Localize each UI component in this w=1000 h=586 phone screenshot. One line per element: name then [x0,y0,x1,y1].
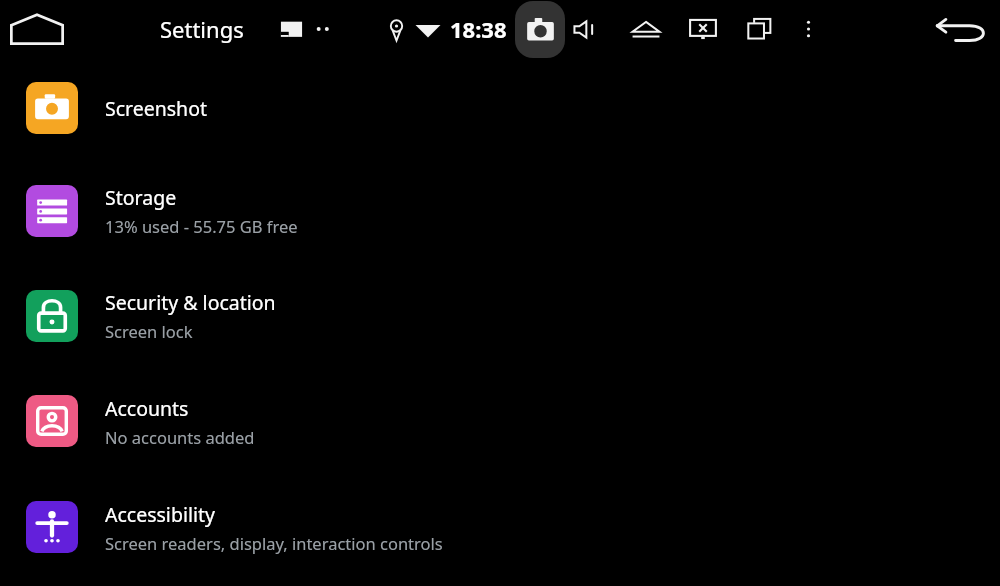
button[interactable]: Take screenshot [515,0,565,58]
button[interactable]: Accounts [0,368,1000,474]
button[interactable]: Recent apps [746,15,775,43]
staticText: Screen readers, display, interaction con… [105,532,443,554]
button[interactable]: Disconnect display [688,15,718,44]
staticText: Screenshot [105,95,208,122]
button[interactable]: More options [802,15,815,43]
button[interactable]: Screenshot captured [280,18,303,41]
button[interactable]: Home [10,13,64,45]
button[interactable]: Mute volume [573,16,602,43]
staticText: 13% used - 55.75 GB free [105,215,298,237]
staticText: Accounts [105,395,189,422]
staticText: Storage [105,184,177,211]
staticText: Settings [160,14,244,44]
button[interactable]: Security & location [0,263,1000,368]
button[interactable]: Settings [160,14,244,44]
button[interactable]: Wi-Fi [415,18,441,41]
staticText: Security & location [105,289,276,316]
button[interactable]: Storage [0,158,1000,263]
button[interactable]: Eject [630,16,662,43]
button[interactable]: More notifications [311,18,335,40]
button[interactable]: Screenshot [0,58,1000,158]
button[interactable]: Back [934,13,988,45]
button[interactable]: Accessibility [0,474,1000,580]
staticText: No accounts added [105,426,255,448]
staticText: 18:38 [450,14,507,44]
button[interactable]: Location active [387,17,406,42]
button[interactable]: 18:38 [450,14,507,44]
staticText: Accessibility [105,501,215,528]
staticText: Screen lock [105,320,193,342]
